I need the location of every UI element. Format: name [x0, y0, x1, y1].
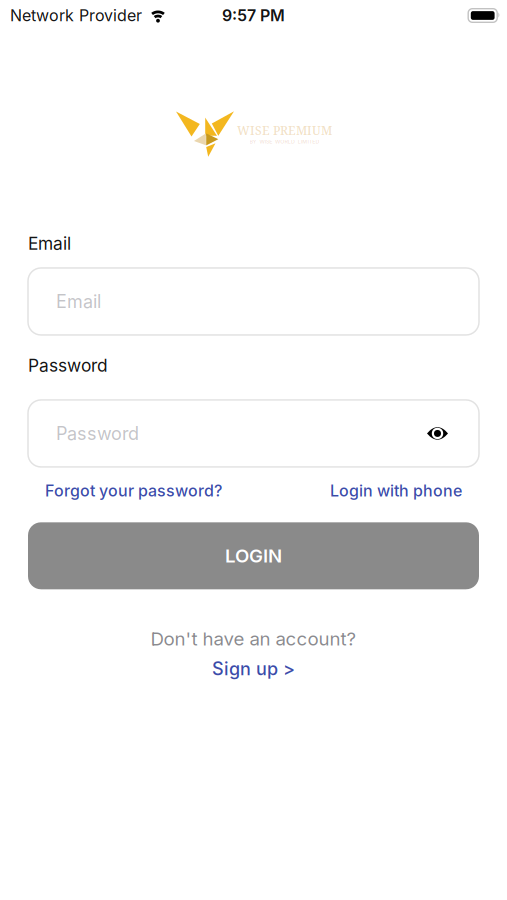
staticText: Network Provider: [10, 6, 142, 25]
staticText: BY WISE WORLD LIMITED: [249, 138, 319, 145]
staticText: Email: [56, 291, 101, 312]
button[interactable]: Login with phone: [330, 481, 462, 500]
staticText: Password: [28, 355, 108, 376]
staticText: Password: [56, 423, 139, 444]
staticText: Sign up >: [212, 658, 295, 680]
staticText: Email: [28, 233, 71, 254]
button[interactable]: Forgot your password?: [45, 481, 222, 500]
staticText: 9:57 PM: [222, 6, 285, 25]
button[interactable]: Password: [28, 400, 479, 467]
button[interactable]: Sign up >: [212, 658, 295, 680]
button[interactable]: LOGIN: [28, 522, 479, 589]
staticText: Login with phone: [330, 481, 462, 500]
button[interactable]: Email: [28, 268, 479, 335]
button[interactable]: Show password: [427, 426, 448, 441]
staticText: WISE PREMIUM: [237, 122, 332, 138]
staticText: Don't have an account?: [150, 627, 356, 650]
staticText: LOGIN: [225, 544, 282, 567]
staticText: Forgot your password?: [45, 481, 222, 500]
